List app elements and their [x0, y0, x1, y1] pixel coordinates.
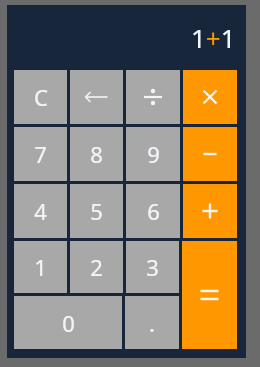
staticText: 1 — [34, 252, 47, 282]
button[interactable]: 0 — [14, 296, 122, 349]
button[interactable]: Plus — [183, 184, 237, 238]
staticText: . — [149, 308, 155, 338]
staticText: 7 — [34, 139, 47, 169]
staticText: C — [34, 82, 48, 112]
button[interactable]: 3 — [126, 241, 179, 293]
staticText: 8 — [90, 139, 103, 169]
staticText: 9 — [147, 139, 160, 169]
button[interactable]: 6 — [126, 184, 180, 238]
staticText: 0 — [62, 308, 75, 338]
staticText: 5 — [90, 196, 103, 226]
staticText: 2 — [90, 252, 103, 282]
button[interactable]: 5 — [70, 184, 123, 238]
button[interactable]: 1 — [14, 241, 67, 293]
button[interactable]: . — [125, 296, 179, 349]
button[interactable]: C — [14, 70, 67, 124]
button[interactable]: Multiply — [183, 70, 237, 124]
button[interactable]: 7 — [14, 127, 67, 181]
staticText: 6 — [147, 196, 160, 226]
staticText: 1+1 — [191, 20, 236, 55]
staticText: 4 — [34, 196, 47, 226]
button[interactable]: 2 — [70, 241, 123, 293]
button[interactable]: 8 — [70, 127, 123, 181]
button[interactable]: Equals — [182, 241, 237, 349]
button[interactable]: Backspace — [70, 70, 123, 124]
button[interactable]: 9 — [126, 127, 180, 181]
staticText: 3 — [146, 252, 159, 282]
button[interactable]: Minus — [183, 127, 237, 181]
button[interactable]: 4 — [14, 184, 67, 238]
button[interactable]: Divide — [126, 70, 180, 124]
